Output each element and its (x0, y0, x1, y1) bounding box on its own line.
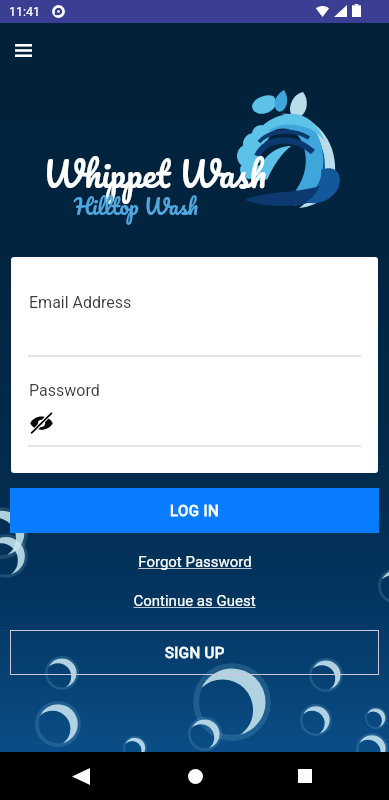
staticText: Continue as Guest (133, 592, 256, 610)
button[interactable]: Back (57, 752, 105, 800)
button[interactable]: Recent apps (281, 752, 329, 800)
button[interactable]: Show password (25, 409, 57, 437)
staticText: 11:41 (9, 4, 41, 19)
button[interactable]: SIGN UP (10, 630, 379, 675)
staticText: Hilltop Wash (74, 188, 198, 225)
button[interactable]: Forgot Password (138, 553, 252, 571)
button[interactable]: Open navigation menu (9, 36, 37, 64)
staticText: Forgot Password (138, 553, 252, 571)
staticText: Whippet Wash (43, 144, 267, 204)
staticText: SIGN UP (165, 644, 225, 662)
button[interactable]: Home (171, 752, 219, 800)
staticText: LOG IN (170, 502, 220, 520)
button[interactable]: LOG IN (10, 488, 379, 533)
staticText: Email Address (29, 293, 132, 312)
button[interactable]: Continue as Guest (133, 592, 256, 610)
staticText: Password (29, 381, 100, 400)
